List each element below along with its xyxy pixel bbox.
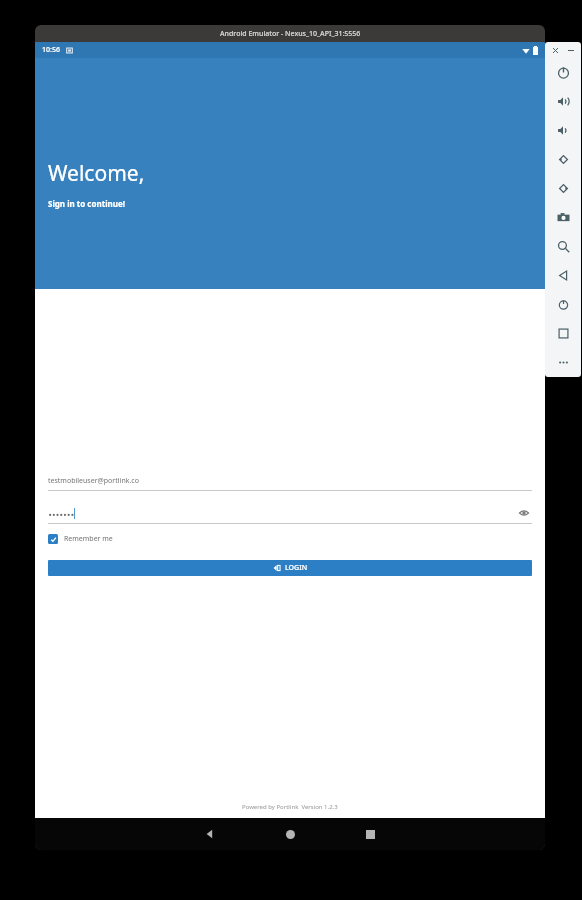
button[interactable]: Back [187,818,233,850]
button[interactable]: Close [549,44,561,56]
staticText: Welcome, [48,159,145,188]
button[interactable]: LOGIN [48,560,532,576]
button[interactable]: Recent apps [347,818,393,850]
button[interactable]: Show password [516,505,532,521]
button[interactable]: Power [545,58,581,87]
staticText: 10:56 [42,45,60,55]
staticText: testmobileuser@portlink.co [48,476,139,486]
button[interactable]: Rotate right [545,174,581,203]
staticText: LOGIN [285,563,308,573]
button[interactable]: More [545,348,581,377]
button[interactable] [48,508,516,519]
button[interactable]: testmobileuser@portlink.co [48,474,532,491]
button[interactable]: Zoom [545,232,581,261]
button[interactable]: Take screenshot [545,203,581,232]
button[interactable]: Rotate left [545,145,581,174]
button[interactable]: Home [545,290,581,319]
button[interactable]: Volume down [545,116,581,145]
button[interactable]: Back [545,261,581,290]
button[interactable]: Remember me [48,534,113,544]
staticText: Powered by Portlink Version 1.2.3 [242,803,338,811]
button[interactable]: Recent apps [545,319,581,348]
staticText: Sign in to continue! [48,198,125,209]
button[interactable]: Home [267,818,313,850]
staticText: Android Emulator - Nexus_10_API_31:5556 [220,29,361,39]
staticText: Remember me [64,534,113,544]
button[interactable]: Minimize [565,44,577,56]
button[interactable]: Volume up [545,87,581,116]
